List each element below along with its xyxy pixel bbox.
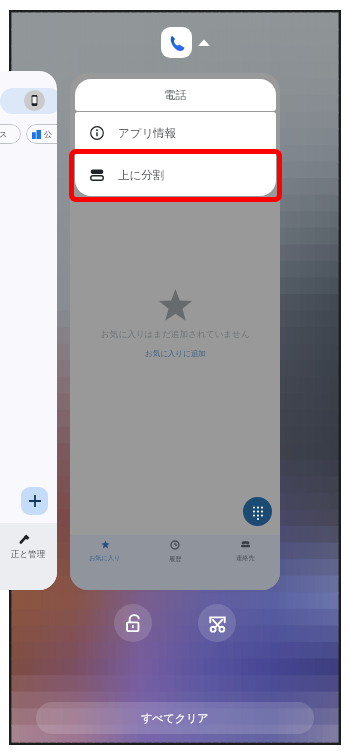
- staticText: 履歴: [169, 555, 182, 563]
- button[interactable]: お気に入り: [70, 535, 140, 590]
- staticText: お気に入り: [89, 554, 121, 562]
- button[interactable]: Lock: [114, 604, 152, 642]
- button[interactable]: お気に入りはまだ追加されていません: [70, 73, 280, 590]
- button[interactable]: すべてクリア: [36, 702, 314, 734]
- staticText: お気に入りはまだ追加されていません: [101, 329, 250, 340]
- button[interactable]: Screenshot: [198, 604, 236, 642]
- button[interactable]: 連絡先: [210, 535, 280, 590]
- button[interactable]: Add: [21, 487, 48, 515]
- staticText: アプリ情報: [118, 126, 177, 140]
- staticText: 上に分割: [118, 168, 165, 182]
- button[interactable]: 上に分割: [75, 154, 276, 196]
- staticText: 連絡先: [236, 554, 255, 562]
- button[interactable]: ス: [0, 71, 57, 590]
- button[interactable]: Phone app: [161, 27, 192, 58]
- button[interactable]: アプリ情報: [75, 112, 276, 154]
- button[interactable]: 履歴: [140, 535, 210, 590]
- button[interactable]: お気に入りに追加: [145, 349, 206, 358]
- staticText: ス: [0, 129, 8, 139]
- staticText: すべてクリア: [141, 711, 209, 725]
- staticText: 電話: [164, 88, 187, 102]
- staticText: 正と管理: [11, 549, 46, 560]
- staticText: 公: [44, 129, 52, 139]
- button[interactable]: Dial pad: [243, 497, 272, 526]
